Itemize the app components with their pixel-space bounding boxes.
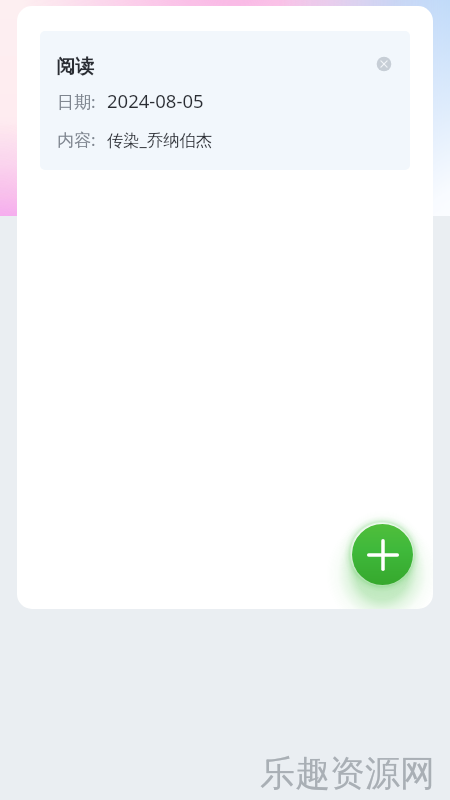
button[interactable]: 阅读 [40, 31, 410, 170]
staticText: 阅读 [56, 55, 94, 79]
button[interactable]: Close [372, 52, 396, 76]
staticText: 乐趣资源网 [260, 751, 435, 795]
staticText: 传染_乔纳伯杰 [107, 129, 213, 151]
staticText: 2024-08-05 [107, 88, 204, 113]
staticText: 内容: [57, 128, 96, 151]
button[interactable]: Add [352, 524, 413, 585]
staticText: 日期: [57, 90, 96, 113]
